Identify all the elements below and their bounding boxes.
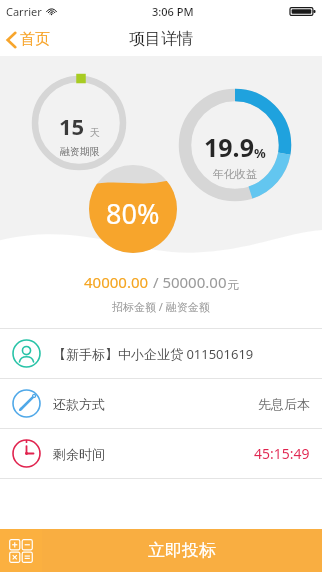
button[interactable]: 计算器 [0,529,42,572]
button[interactable]: 剩余时间 [0,429,322,478]
staticText: 15 [59,111,85,141]
staticText: 元 [227,277,239,292]
staticText: / 50000.00 [149,272,227,292]
staticText: 年化收益 [213,167,257,181]
button[interactable]: 首页 [0,26,60,53]
staticText: 融资期限 [60,145,100,158]
staticText: 40000.00 [84,272,149,292]
staticText: 【新手标】中小企业贷 011501619 [53,345,254,363]
button[interactable]: 【新手标】中小企业贷 011501619 [0,329,322,378]
staticText: 3:06 PM [152,4,194,19]
staticText: 项目详情 [129,29,193,49]
staticText: 首页 [20,30,50,49]
staticText: 还款方式 [53,396,105,412]
staticText: 19.9 [204,130,254,164]
staticText: 剩余时间 [53,446,105,462]
staticText: 45:15:49 [254,444,310,463]
staticText: 立即投标 [148,540,216,561]
button[interactable]: 还款方式 [0,379,322,428]
button[interactable]: 立即投标 [42,529,322,572]
staticText: 招标金额 / 融资金额 [112,299,210,314]
staticText: 80% [106,195,160,232]
staticText: 先息后本 [258,396,310,412]
staticText: Carrier [6,4,42,19]
staticText: % [254,144,266,162]
staticText: 天 [90,126,100,139]
